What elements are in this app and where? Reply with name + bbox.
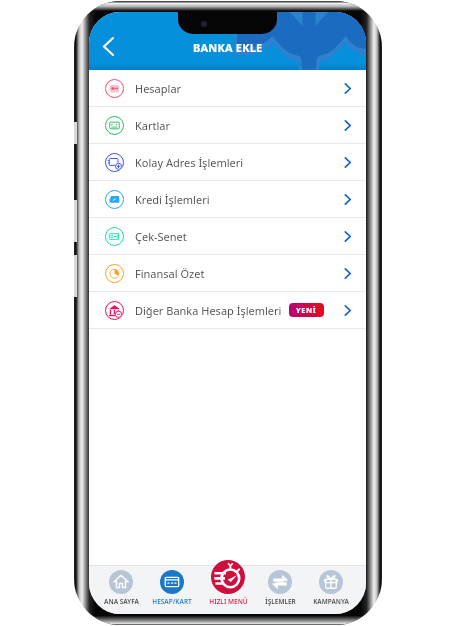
button[interactable]: Back [90,28,126,64]
button[interactable]: Hesaplar [89,70,366,106]
button[interactable]: KAMPANYA [306,560,356,614]
button[interactable]: Kolay Adres İşlemleri [89,144,366,180]
staticText: YENİ [296,305,317,315]
staticText: Çek-Senet [135,229,187,244]
button[interactable]: İŞLEMLER [255,560,305,614]
staticText: İŞLEMLER [265,597,296,606]
button[interactable]: Finansal Özet [89,255,366,291]
button[interactable]: ANA SAYFA [96,560,146,614]
staticText: KAMPANYA [313,597,349,606]
button[interactable]: Çek-Senet [89,218,366,254]
staticText: Hesaplar [135,81,182,96]
button[interactable]: HESAP/KART [147,560,197,614]
staticText: HIZLI MENÜ [209,597,248,606]
staticText: Kredi İşlemleri [135,192,210,207]
staticText: Finansal Özet [135,266,205,281]
staticText: Kolay Adres İşlemleri [135,155,244,170]
button[interactable]: HIZLI MENÜ [203,560,253,614]
staticText: Diğer Banka Hesap İşlemleri [135,303,282,318]
button[interactable]: Kredi İşlemleri [89,181,366,217]
button[interactable]: Diğer Banka Hesap İşlemleri [89,292,366,328]
staticText: HESAP/KART [152,597,192,606]
staticText: ANA SAYFA [104,597,139,606]
staticText: Kartlar [135,118,171,133]
staticText: BANKA EKLE [193,40,263,55]
button[interactable]: Kartlar [89,107,366,143]
